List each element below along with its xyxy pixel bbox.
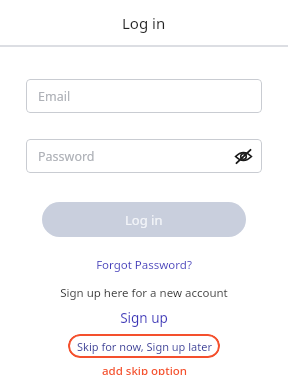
- staticText: Log in: [125, 211, 163, 229]
- button[interactable]: Show password: [232, 145, 254, 167]
- staticText: Sign up here for a new account: [60, 285, 228, 301]
- button[interactable]: Password: [26, 139, 262, 173]
- staticText: Skip for now, Sign up later: [77, 339, 212, 354]
- button[interactable]: Forgot Password?: [90, 255, 198, 275]
- staticText: Password: [38, 148, 232, 165]
- staticText: Email: [38, 88, 71, 105]
- staticText: Forgot Password?: [96, 257, 192, 273]
- staticText: add skip option: [102, 363, 187, 375]
- button[interactable]: Skip for now, Sign up later: [68, 334, 220, 358]
- button[interactable]: Log in: [42, 202, 246, 237]
- button[interactable]: Sign up: [114, 308, 174, 328]
- staticText: Log in: [122, 13, 166, 33]
- staticText: Sign up: [120, 309, 168, 327]
- button[interactable]: Email: [26, 79, 262, 113]
